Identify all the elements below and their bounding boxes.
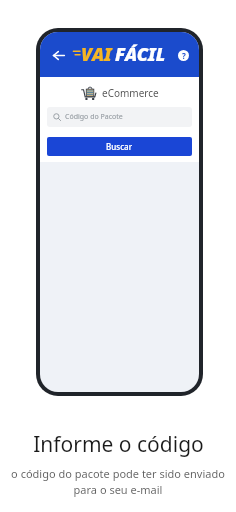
staticText: Código do Pacote (65, 112, 123, 122)
button[interactable]: Back (46, 43, 70, 67)
staticText: ? (182, 50, 186, 61)
button[interactable]: Buscar (47, 137, 192, 156)
button[interactable]: Código do Pacote (47, 107, 192, 127)
staticText: VAI (81, 42, 112, 67)
staticText: o código do pacote pode ter sido enviado… (11, 466, 225, 498)
staticText: Buscar (106, 141, 133, 152)
staticText: Informe o código (33, 430, 204, 459)
button[interactable]: Help (173, 45, 193, 65)
staticText: eCommerce (102, 86, 159, 100)
staticText: FÁCIL (115, 42, 166, 67)
